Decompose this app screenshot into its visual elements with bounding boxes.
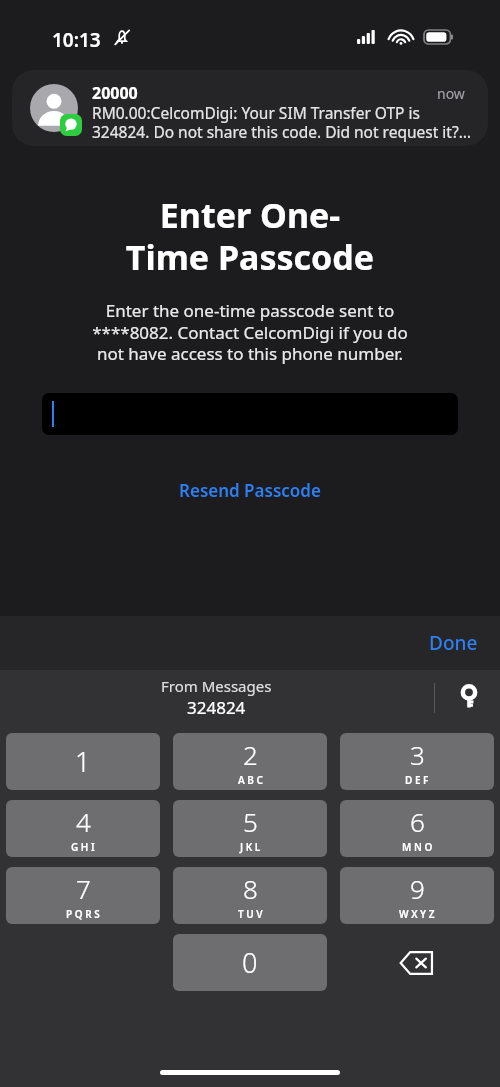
- button[interactable]: 0: [173, 934, 327, 991]
- staticText: G H I: [71, 840, 95, 854]
- button[interactable]: 5: [173, 800, 327, 857]
- button[interactable]: 6: [340, 800, 494, 857]
- button[interactable]: 20000: [12, 70, 488, 146]
- staticText: 0: [242, 944, 258, 981]
- staticText: T U V: [238, 907, 263, 921]
- staticText: 20000: [92, 82, 138, 104]
- staticText: 324824: [187, 696, 246, 719]
- staticText: 4: [76, 804, 91, 839]
- staticText: 5: [243, 804, 258, 839]
- staticText: J K L: [240, 840, 261, 854]
- button[interactable]: Resend Passcode: [0, 476, 500, 504]
- staticText: RM0.00:CelcomDigi: Your SIM Transfer OTP…: [92, 102, 482, 142]
- staticText: 3: [410, 737, 425, 772]
- staticText: 10:13: [52, 27, 101, 53]
- button[interactable]: From Messages: [0, 670, 500, 725]
- staticText: P Q R S: [66, 907, 100, 921]
- button[interactable]: Done: [421, 624, 486, 662]
- staticText: A B C: [238, 773, 263, 787]
- staticText: 6: [410, 804, 425, 839]
- staticText: From Messages: [161, 676, 272, 696]
- staticText: 8: [243, 871, 258, 906]
- button[interactable]: 2: [173, 733, 327, 790]
- staticText: D E F: [405, 773, 429, 787]
- button[interactable]: 1: [6, 733, 160, 790]
- button[interactable]: 9: [340, 867, 494, 924]
- staticText: 9: [410, 871, 425, 906]
- button[interactable]: Passwords: [455, 684, 483, 712]
- staticText: W X Y Z: [399, 907, 435, 921]
- staticText: 2: [243, 737, 258, 772]
- button[interactable]: 4: [6, 800, 160, 857]
- button[interactable]: Delete: [340, 934, 494, 991]
- button[interactable]: 7: [6, 867, 160, 924]
- button[interactable]: 8: [173, 867, 327, 924]
- staticText: Enter One- Time Passcode: [0, 192, 500, 280]
- staticText: now: [437, 84, 465, 103]
- button[interactable]: [42, 393, 458, 435]
- staticText: M N O: [402, 840, 433, 854]
- staticText: 7: [76, 871, 91, 906]
- button[interactable]: 3: [340, 733, 494, 790]
- staticText: Resend Passcode: [179, 479, 321, 502]
- staticText: Enter the one-time passcode sent to ****…: [90, 299, 410, 365]
- staticText: 1: [75, 743, 91, 780]
- staticText: Done: [429, 630, 478, 656]
